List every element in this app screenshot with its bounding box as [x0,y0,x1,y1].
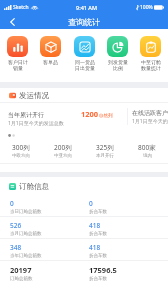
staticText: 200列 [54,143,72,152]
staticText: 当日订舱总箱数 [10,209,42,215]
staticText: 1月1日至今天的发运总数 [8,120,64,127]
staticText: 中欧方向 [12,153,30,159]
staticText: 9:41 AM [76,4,98,11]
staticText: 348 [10,243,22,252]
button[interactable]: 800家 [126,143,168,159]
staticText: 订舱总箱数 [10,276,33,282]
staticText: 0 [89,199,93,208]
staticText: 折合车数 [89,209,107,215]
staticText: 日出货量 [75,65,95,71]
staticText: 境内 [143,153,152,159]
button[interactable]: 300列 [0,143,42,159]
staticText: 到发货量 [108,59,128,65]
staticText: 中亚方向 [54,153,72,159]
staticText: 当月订舱总箱数 [10,231,42,237]
staticText: 800家 [138,143,156,152]
staticText: 折合车数 [89,231,107,237]
staticText: 订舱信息 [19,182,49,191]
button[interactable]: 348 [0,239,168,261]
staticText: 中至订舱 [141,59,161,65]
staticText: 客单品 [43,59,58,65]
staticText: 发运情况 [19,91,49,100]
staticText: 100% [140,4,153,11]
button[interactable]: 200列 [42,143,84,159]
button[interactable]: 客户日计 [2,36,33,71]
staticText: 数量统计 [141,65,161,71]
staticText: 526 [10,221,22,230]
staticText: 折合车数 [89,253,107,259]
staticText: Sketch [13,4,29,11]
staticText: 0 [10,199,14,208]
staticText: 1200 [81,109,99,119]
button[interactable]: 同一货品 [69,36,100,71]
staticText: 17596.5 [89,265,117,275]
staticText: 当年累计开行 [8,111,44,119]
button[interactable]: 0 [0,195,168,217]
staticText: 比例 [113,65,123,71]
staticText: 300列 [12,143,30,152]
staticText: 自然列 [99,113,113,119]
button[interactable]: Back [0,14,24,29]
button[interactable]: 20197 [0,261,168,283]
staticText: 本月开行 [96,153,114,159]
button[interactable]: 325列 [84,143,126,159]
staticText: 客户日计 [8,59,28,65]
button[interactable]: 中至订舱 [135,36,166,71]
staticText: 当年订舱总箱数 [10,253,42,259]
button[interactable]: 526 [0,217,168,239]
staticText: 418 [89,221,101,230]
staticText: 在线活跃客户 [132,109,168,117]
staticText: 20197 [10,265,32,275]
staticText: 同一货品 [75,59,95,65]
staticText: 1月1日至今天的活跃客户 [132,118,168,125]
staticText: 折合车数 [89,276,107,282]
staticText: 325列 [96,143,114,152]
staticText: 查询统计 [68,17,100,27]
button[interactable]: 客单品 [35,36,66,65]
button[interactable]: 到发货量 [102,36,133,71]
staticText: 销量 [13,65,23,71]
staticText: 418 [89,243,101,252]
